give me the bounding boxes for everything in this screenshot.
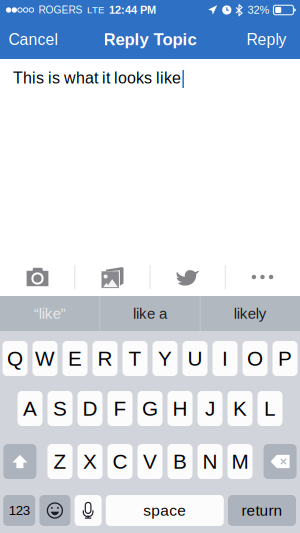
- button[interactable]: I: [212, 341, 237, 376]
- staticText: G: [142, 397, 158, 420]
- staticText: “like”: [34, 305, 66, 322]
- button[interactable]: S: [47, 391, 72, 426]
- button[interactable]: E: [62, 341, 87, 376]
- staticText: U: [187, 347, 202, 370]
- staticText: Y: [158, 347, 172, 370]
- staticText: O: [247, 347, 263, 370]
- staticText: K: [233, 397, 247, 420]
- staticText: S: [53, 397, 67, 420]
- button[interactable]: K: [227, 391, 252, 426]
- button[interactable]: N: [197, 444, 222, 479]
- button[interactable]: return: [228, 495, 296, 526]
- staticText: like a: [133, 305, 167, 322]
- staticText: M: [231, 450, 248, 473]
- staticText: B: [173, 450, 187, 473]
- staticText: Cancel: [8, 31, 57, 48]
- button[interactable]: J: [197, 391, 222, 426]
- button[interactable]: O: [242, 341, 267, 376]
- staticText: H: [172, 397, 187, 420]
- button[interactable]: Photo Library: [75, 258, 150, 296]
- button[interactable]: A: [17, 391, 42, 426]
- button[interactable]: More options: [225, 258, 300, 296]
- button[interactable]: B: [167, 444, 192, 479]
- staticText: W: [35, 347, 55, 370]
- staticText: E: [68, 347, 82, 370]
- staticText: T: [128, 347, 141, 370]
- staticText: 32%: [247, 4, 269, 16]
- button[interactable]: P: [272, 341, 297, 376]
- staticText: I: [222, 347, 228, 370]
- staticText: 123: [9, 503, 30, 518]
- button[interactable]: Shift: [3, 444, 36, 479]
- staticText: P: [278, 347, 292, 370]
- button[interactable]: M: [227, 444, 252, 479]
- staticText: R: [97, 347, 112, 370]
- button[interactable]: T: [122, 341, 147, 376]
- button[interactable]: Dictation: [75, 495, 102, 526]
- staticText: D: [82, 397, 97, 420]
- staticText: A: [23, 397, 37, 420]
- button[interactable]: Twitter: [150, 258, 225, 296]
- staticText: likely: [234, 305, 267, 322]
- button[interactable]: “like”: [0, 296, 99, 331]
- staticText: V: [143, 450, 157, 473]
- staticText: 12:44 PM: [109, 4, 156, 16]
- button[interactable]: 123: [3, 495, 35, 526]
- staticText: F: [113, 397, 126, 420]
- button[interactable]: Cancel: [0, 20, 65, 59]
- staticText: C: [112, 450, 127, 473]
- button[interactable]: Q: [2, 341, 27, 376]
- button[interactable]: F: [107, 391, 132, 426]
- button[interactable]: Emoji: [39, 495, 70, 526]
- button[interactable]: Y: [152, 341, 177, 376]
- button[interactable]: likely: [201, 296, 300, 331]
- button[interactable]: X: [77, 444, 102, 479]
- button[interactable]: W: [32, 341, 57, 376]
- button[interactable]: Z: [47, 444, 72, 479]
- button[interactable]: G: [137, 391, 162, 426]
- button[interactable]: like a: [100, 296, 200, 331]
- staticText: space: [143, 502, 186, 519]
- button[interactable]: U: [182, 341, 207, 376]
- staticText: This is what it looks like: [13, 69, 181, 87]
- button[interactable]: space: [106, 495, 224, 526]
- staticText: Q: [7, 347, 23, 370]
- button[interactable]: H: [167, 391, 192, 426]
- button[interactable]: Reply: [238, 20, 300, 59]
- staticText: ROGERS: [39, 4, 83, 16]
- staticText: return: [241, 502, 282, 519]
- staticText: L: [264, 397, 276, 420]
- staticText: X: [83, 450, 97, 473]
- staticText: LTE: [87, 5, 104, 15]
- staticText: J: [205, 397, 215, 420]
- button[interactable]: C: [107, 444, 132, 479]
- staticText: Reply: [246, 31, 286, 48]
- button[interactable]: Delete: [264, 444, 297, 479]
- staticText: Z: [53, 450, 66, 473]
- button[interactable]: Camera: [0, 258, 75, 296]
- button[interactable]: L: [257, 391, 282, 426]
- button[interactable]: D: [77, 391, 102, 426]
- button[interactable]: V: [137, 444, 162, 479]
- staticText: N: [202, 450, 217, 473]
- staticText: Reply Topic: [103, 30, 196, 49]
- button[interactable]: R: [92, 341, 117, 376]
